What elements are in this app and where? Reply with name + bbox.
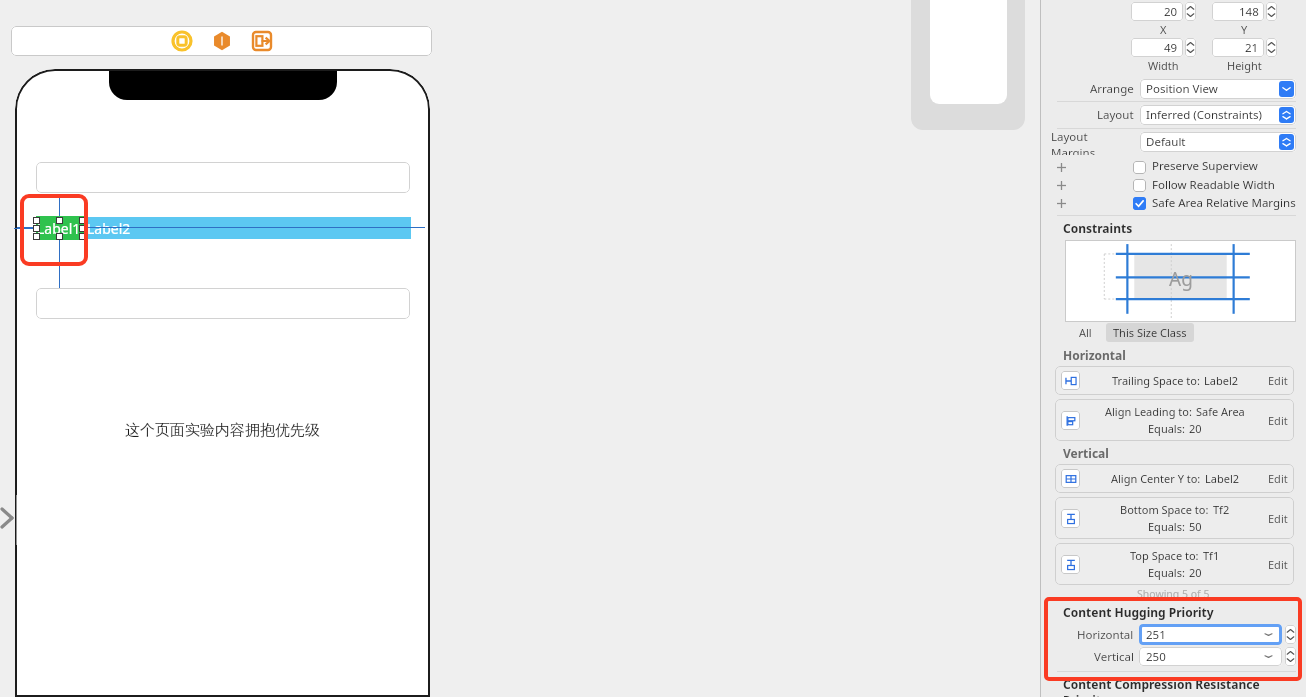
button[interactable]: Label1: [36, 216, 86, 240]
staticText: 148: [1239, 4, 1259, 20]
staticText: Safe Area Relative Margins: [1152, 195, 1296, 211]
staticText: Edit: [1268, 413, 1288, 428]
staticText: 20: [1164, 4, 1178, 20]
staticText: Height: [1227, 58, 1262, 73]
staticText: 251: [1146, 627, 1166, 643]
staticText: Horizontal: [1063, 347, 1126, 363]
staticText: Bottom Space to:: [1120, 502, 1209, 517]
staticText: X: [1160, 22, 1167, 36]
staticText: 20: [1189, 421, 1202, 436]
staticText: Edit: [1268, 557, 1288, 572]
staticText: Ag: [1169, 266, 1193, 292]
staticText: Equals:: [1148, 421, 1185, 436]
button[interactable]: Trailing Space to:: [1055, 366, 1294, 395]
button[interactable]: 20: [1131, 2, 1183, 21]
button[interactable]: All: [1079, 325, 1092, 340]
button[interactable]: Default: [1140, 132, 1296, 152]
staticText: Tf2: [1213, 502, 1230, 517]
staticText: Align Leading to:: [1105, 404, 1192, 419]
staticText: Label2: [87, 219, 131, 238]
staticText: Width: [1148, 58, 1179, 73]
button[interactable]: Align Center Y to:: [1055, 464, 1294, 493]
button[interactable]: 49: [1131, 38, 1183, 57]
button[interactable]: Stepper: [1285, 625, 1296, 644]
button[interactable]: Edit: [1268, 557, 1288, 572]
staticText: Constraints: [1063, 220, 1133, 236]
button[interactable]: Stepper: [1266, 38, 1277, 57]
button[interactable]: Bottom Space to:: [1055, 497, 1294, 539]
button[interactable]: Edit: [1268, 413, 1288, 428]
button[interactable]: Exit: [252, 31, 272, 51]
button[interactable]: Preserve Superview Margins: [1051, 158, 1296, 176]
button[interactable]: Edit: [1268, 471, 1288, 486]
staticText: Equals:: [1148, 565, 1185, 580]
staticText: Equals:: [1148, 519, 1185, 534]
button[interactable]: Inferred (Constraints): [1140, 105, 1296, 125]
staticText: Vertical: [1094, 649, 1134, 665]
staticText: Vertical: [1063, 445, 1109, 461]
button[interactable]: Edit: [1268, 511, 1288, 526]
staticText: 20: [1189, 565, 1202, 580]
button[interactable]: 148: [1212, 2, 1264, 21]
staticText: Showing 5 of 5: [1137, 587, 1210, 601]
staticText: Arrange: [1090, 81, 1134, 97]
staticText: Safe Area: [1196, 404, 1245, 419]
staticText: Top Space to:: [1130, 548, 1199, 563]
staticText: Edit: [1268, 471, 1288, 486]
staticText: Default: [1146, 134, 1186, 150]
staticText: Y: [1241, 22, 1248, 36]
button[interactable]: [36, 162, 410, 193]
button[interactable]: View Controller: [172, 31, 192, 51]
staticText: 21: [1245, 40, 1259, 56]
staticText: Trailing Space to:: [1112, 373, 1200, 388]
button[interactable]: Stepper: [1285, 647, 1296, 666]
staticText: Follow Readable Width: [1152, 177, 1275, 193]
staticText: Label1: [37, 219, 81, 238]
button[interactable]: Safe Area Relative Margins: [1051, 194, 1296, 212]
button[interactable]: Edit: [1268, 373, 1288, 388]
button[interactable]: [36, 288, 410, 319]
staticText: Content Hugging Priority: [1063, 604, 1214, 620]
other: Expand: [1, 508, 13, 528]
staticText: This Size Class: [1113, 325, 1187, 340]
button[interactable]: Align Leading to:: [1055, 399, 1294, 441]
staticText: Horizontal: [1077, 627, 1134, 643]
staticText: Inferred (Constraints): [1146, 107, 1262, 123]
staticText: Edit: [1268, 511, 1288, 526]
staticText: Align Center Y to:: [1111, 471, 1201, 486]
button[interactable]: 250: [1139, 647, 1282, 666]
button[interactable]: Stepper: [1185, 2, 1196, 21]
staticText: 这个页面实验内容拥抱优先级: [125, 421, 320, 440]
staticText: Label2: [1204, 373, 1239, 388]
staticText: Label2: [1205, 471, 1240, 486]
button[interactable]: Position View: [1140, 79, 1296, 99]
staticText: 50: [1189, 519, 1202, 534]
staticText: Layout: [1097, 107, 1134, 123]
staticText: 49: [1164, 40, 1178, 56]
button[interactable]: 251: [1139, 624, 1282, 645]
staticText: Preserve Superview Margins: [1152, 158, 1296, 176]
button[interactable]: Stepper: [1266, 2, 1277, 21]
staticText: Content Compression Resistance Priority: [1063, 676, 1296, 697]
staticText: Layout Margins: [1051, 129, 1134, 155]
staticText: All: [1079, 325, 1092, 340]
button[interactable]: This Size Class: [1106, 323, 1194, 342]
staticText: Tf1: [1203, 548, 1220, 563]
button[interactable]: 21: [1212, 38, 1264, 57]
staticText: 250: [1146, 649, 1166, 664]
button[interactable]: Stepper: [1185, 38, 1196, 57]
button[interactable]: Follow Readable Width: [1051, 176, 1296, 194]
button[interactable]: Top Space to:: [1055, 543, 1294, 585]
staticText: Position View: [1146, 81, 1218, 97]
button[interactable]: First Responder: [212, 31, 232, 51]
staticText: Edit: [1268, 373, 1288, 388]
